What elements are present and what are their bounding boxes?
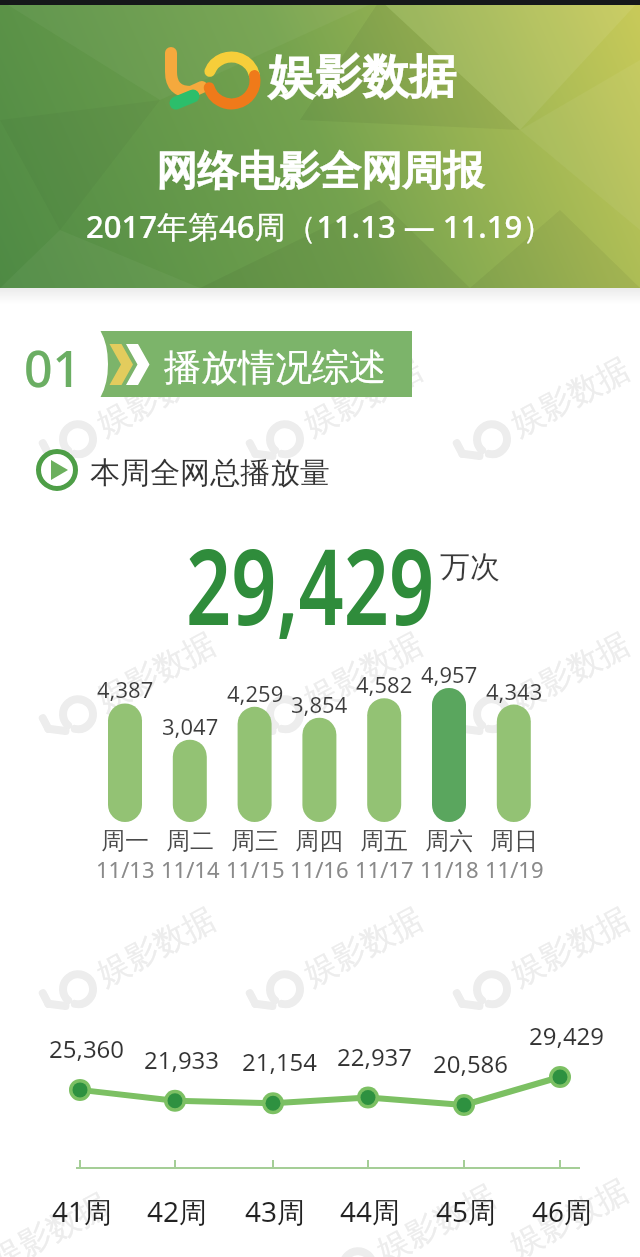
staticText: 4,259 bbox=[227, 678, 284, 708]
staticText: 22,937 bbox=[337, 1040, 413, 1073]
staticText: 周日 bbox=[490, 826, 538, 856]
staticText: 娱影数据 bbox=[504, 349, 636, 444]
staticText: 11/13 bbox=[96, 854, 155, 884]
button[interactable]: 本周全网总播放量 bbox=[90, 454, 330, 492]
staticText: 娱影数据 bbox=[90, 624, 222, 719]
staticText: 46周 bbox=[532, 1192, 593, 1230]
staticText: 29,429 bbox=[186, 514, 434, 656]
staticText: 娱影数据 bbox=[370, 1176, 502, 1257]
staticText: 01 bbox=[24, 334, 82, 402]
staticText: 娱影数据 bbox=[503, 1170, 635, 1257]
staticText: 万次 bbox=[440, 548, 500, 586]
staticText: 周五 bbox=[360, 826, 408, 856]
staticText: 周三 bbox=[231, 826, 279, 856]
staticText: 网络电影全网周报 bbox=[156, 146, 484, 198]
staticText: 周一 bbox=[101, 826, 149, 856]
staticText: 21,933 bbox=[144, 1043, 220, 1076]
staticText: 4,957 bbox=[421, 659, 478, 689]
staticText: 11/14 bbox=[161, 854, 220, 884]
staticText: 2017年第46周（11.13 — 11.19） bbox=[86, 205, 554, 247]
button[interactable] bbox=[88, 331, 412, 397]
staticText: 45周 bbox=[436, 1192, 497, 1230]
staticText: 20,586 bbox=[433, 1047, 509, 1080]
staticText: 3,854 bbox=[291, 689, 348, 719]
staticText: 本周全网总播放量 bbox=[90, 454, 330, 492]
staticText: 11/16 bbox=[290, 854, 349, 884]
staticText: 29,429 bbox=[529, 1019, 605, 1052]
staticText: 娱影数据 bbox=[504, 899, 636, 994]
staticText: 4,387 bbox=[97, 674, 154, 704]
staticText: 娱影数据 bbox=[90, 349, 222, 444]
staticText: 娱影数据 bbox=[504, 624, 636, 719]
staticText: 44周 bbox=[340, 1192, 401, 1230]
staticText: 娱影数据 bbox=[297, 899, 429, 994]
staticText: 3,047 bbox=[162, 711, 219, 741]
staticText: 42周 bbox=[147, 1192, 208, 1230]
staticText: 周四 bbox=[295, 826, 343, 856]
staticText: 43周 bbox=[245, 1192, 306, 1230]
staticText: 4,582 bbox=[356, 669, 413, 699]
staticText: 周二 bbox=[166, 826, 214, 856]
staticText: 41周 bbox=[52, 1192, 113, 1230]
staticText: 娱影数据 bbox=[268, 48, 456, 107]
staticText: 11/19 bbox=[485, 854, 544, 884]
staticText: 11/18 bbox=[420, 854, 479, 884]
staticText: 娱影数据 bbox=[90, 899, 222, 994]
staticText: 25,360 bbox=[49, 1032, 125, 1065]
staticText: 11/17 bbox=[355, 854, 414, 884]
staticText: 娱影数据 bbox=[297, 624, 429, 719]
staticText: 娱影数据 bbox=[297, 349, 429, 444]
staticText: 4,343 bbox=[486, 676, 543, 706]
staticText: 11/15 bbox=[226, 854, 285, 884]
staticText: 播放情况综述 bbox=[164, 344, 386, 391]
staticText: 周六 bbox=[425, 826, 473, 856]
staticText: 21,154 bbox=[242, 1045, 318, 1078]
staticText: 娱影数据 bbox=[0, 1184, 115, 1257]
